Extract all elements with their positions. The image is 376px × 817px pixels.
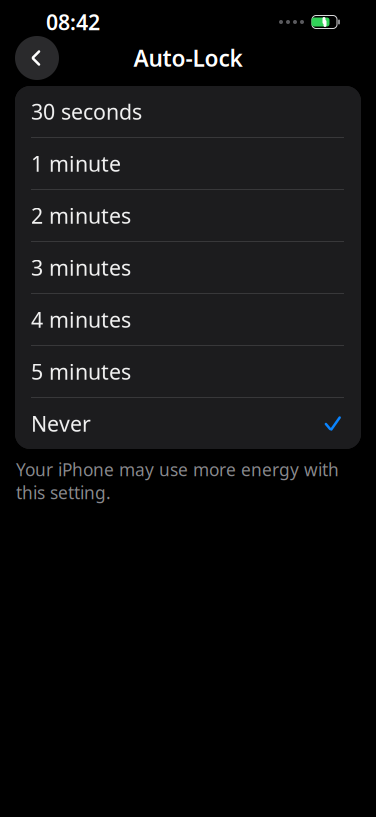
staticText: 5 minutes <box>31 357 131 386</box>
button[interactable]: Back <box>15 36 59 80</box>
staticText: Never <box>31 409 91 438</box>
staticText: 4 minutes <box>31 305 131 334</box>
staticText: Auto-Lock <box>133 43 242 73</box>
button[interactable]: 5 minutes <box>15 346 361 398</box>
button[interactable]: 3 minutes <box>15 242 361 294</box>
button[interactable]: 2 minutes <box>15 190 361 242</box>
staticText: Your iPhone may use more energy with thi… <box>16 458 339 504</box>
button[interactable]: Never <box>15 398 361 449</box>
staticText: 1 minute <box>31 149 121 178</box>
staticText: 3 minutes <box>31 253 131 282</box>
button[interactable]: 4 minutes <box>15 294 361 346</box>
staticText: 30 seconds <box>31 97 142 126</box>
button[interactable]: 1 minute <box>15 138 361 190</box>
staticText: 08:42 <box>46 8 100 36</box>
button[interactable]: 30 seconds <box>15 86 361 138</box>
staticText: 2 minutes <box>31 201 131 230</box>
